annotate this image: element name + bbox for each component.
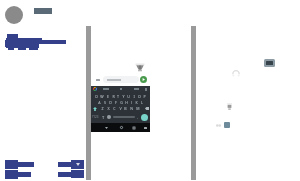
staticText: V [119, 106, 122, 111]
staticText: T [102, 115, 105, 120]
staticText: O [138, 94, 141, 98]
staticText: H [125, 100, 128, 104]
staticText: . [137, 115, 139, 120]
staticText: N [130, 106, 133, 111]
staticText: A [98, 100, 101, 104]
staticText: Y [122, 94, 125, 98]
staticText: Z [101, 106, 104, 111]
button[interactable]: Back [101, 123, 111, 132]
staticText: B [124, 106, 127, 111]
button[interactable]: Emoji [107, 115, 111, 119]
button[interactable]: Backspace [143, 106, 150, 111]
button[interactable]: Space [113, 116, 135, 118]
button[interactable] [71, 160, 84, 169]
staticText: P [143, 94, 146, 98]
staticText: U [127, 94, 130, 98]
button[interactable]: Profile [5, 6, 23, 24]
staticText: ?123 [92, 115, 99, 119]
button[interactable]: Recents [129, 123, 139, 132]
staticText: I [133, 94, 135, 98]
button[interactable]: Send [140, 76, 147, 83]
staticText: M [136, 106, 140, 111]
button[interactable] [103, 76, 139, 83]
staticText: K [135, 100, 138, 104]
staticText: F [115, 100, 117, 104]
staticText: S [104, 100, 106, 104]
staticText: W [100, 94, 104, 98]
button[interactable]: Enter [141, 114, 148, 121]
staticText: G [120, 100, 123, 104]
staticText: E [107, 94, 109, 98]
staticText: L [141, 100, 143, 104]
button[interactable]: Shift [91, 106, 98, 111]
staticText: T [117, 94, 119, 98]
button[interactable]: Home [116, 123, 126, 132]
staticText: R [112, 94, 115, 98]
staticText: D [109, 100, 112, 104]
button[interactable]: More options [94, 77, 101, 83]
staticText: J [131, 100, 132, 104]
staticText: C [113, 106, 116, 111]
button[interactable]: Headphones [232, 70, 240, 78]
staticText: Q [95, 94, 98, 98]
button[interactable]: Screenshot [140, 123, 150, 132]
staticText: X [107, 106, 110, 111]
